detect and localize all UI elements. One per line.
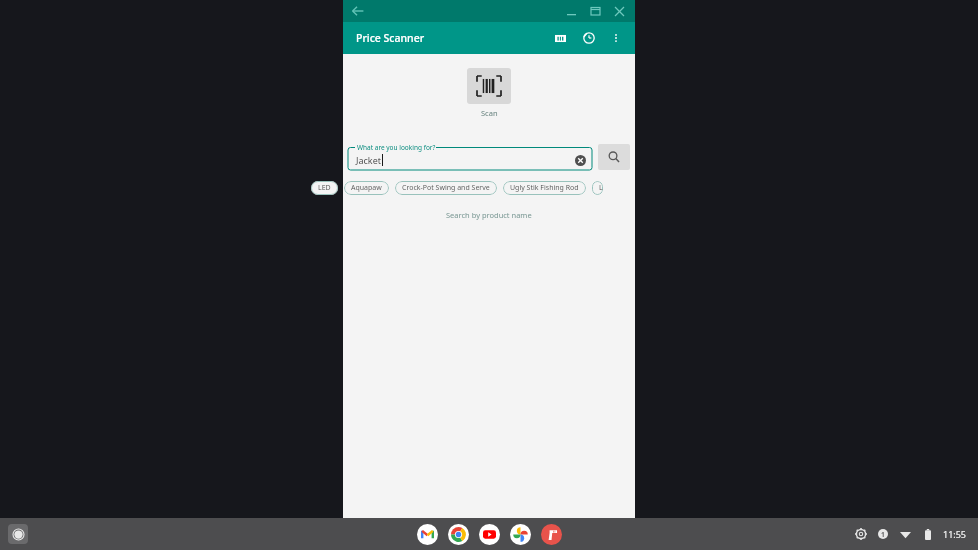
button[interactable]: 11:55 [942, 528, 968, 540]
staticText: What are you looking for? [357, 143, 436, 152]
button[interactable]: Price Scanner [541, 524, 562, 545]
staticText: Ugly Stik Fishing Rod [510, 183, 579, 193]
staticText: 1 [881, 530, 885, 539]
button[interactable]: Search [598, 144, 630, 170]
button[interactable]: Minimize [561, 1, 581, 21]
staticText: Price Scanner [356, 31, 425, 45]
staticText: Scan [481, 108, 498, 118]
button[interactable]: Back [347, 0, 369, 22]
button[interactable]: Scan barcode [549, 27, 571, 49]
button[interactable]: Battery [919, 525, 937, 543]
button[interactable]: LED [311, 181, 338, 195]
button[interactable]: Clear text [573, 153, 587, 167]
button[interactable]: Crock-Pot Swing and Serve [395, 181, 497, 195]
button[interactable]: Launcher [8, 524, 28, 544]
button[interactable]: Aquapaw [344, 181, 389, 195]
button[interactable]: More options [605, 27, 627, 49]
button[interactable]: Gmail [417, 524, 438, 545]
staticText: Crock-Pot Swing and Serve [402, 183, 490, 193]
button[interactable]: Scan barcode [467, 68, 511, 104]
button[interactable]: Close [609, 1, 629, 21]
button[interactable]: Chrome [448, 524, 469, 545]
staticText: Aquapaw [351, 183, 382, 193]
button[interactable]: What are you looking for? [348, 144, 592, 170]
button[interactable]: History [578, 27, 600, 49]
button[interactable]: YouTube [479, 524, 500, 545]
button[interactable]: Wi-Fi [896, 525, 914, 543]
button[interactable]: Google Photos [510, 524, 531, 545]
button[interactable]: Notifications [874, 525, 892, 543]
button[interactable]: Settings [852, 525, 870, 543]
button[interactable]: Ugly Stik Fishing Rod [503, 181, 586, 195]
staticText: 11:55 [943, 528, 967, 540]
staticText: Search by product name [446, 210, 532, 220]
staticText: Jacket [356, 154, 381, 166]
staticText: LED [318, 183, 331, 193]
button[interactable]: Maximize [585, 1, 605, 21]
button[interactable]: Lego Batman [592, 181, 603, 195]
